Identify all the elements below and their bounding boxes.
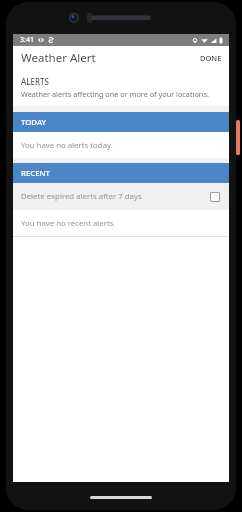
staticText: Weather Alert: [21, 50, 96, 66]
staticText: DONE: [200, 53, 222, 63]
staticText: TODAY: [21, 117, 47, 128]
staticText: RECENT: [21, 168, 50, 179]
other: Delete expired alerts after 7 days check…: [210, 192, 220, 202]
staticText: ALERTS: [21, 76, 49, 87]
button[interactable]: Delete expired alerts after 7 days: [13, 183, 229, 210]
button[interactable]: DONE: [193, 48, 229, 68]
staticText: Weather alerts affecting one or more of …: [21, 89, 209, 99]
staticText: You have no recent alerts.: [21, 218, 116, 229]
staticText: 3:41: [20, 35, 34, 45]
staticText: Delete expired alerts after 7 days: [21, 191, 142, 202]
staticText: You have no alerts today.: [21, 140, 113, 151]
